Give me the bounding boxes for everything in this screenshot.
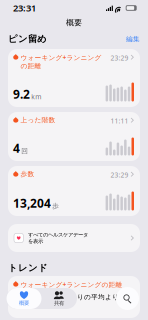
button[interactable]: 編集 xyxy=(126,35,140,43)
staticText: 共有 xyxy=(54,300,64,306)
button[interactable]: ウォーキング+ランニング の距離 xyxy=(8,49,140,107)
staticText: 13,204 xyxy=(13,195,51,211)
staticText: 概要 xyxy=(19,300,29,306)
button[interactable]: 概要 xyxy=(6,288,41,309)
staticText: 回 xyxy=(21,147,28,155)
staticText: 編集 xyxy=(126,35,140,43)
staticText: 4 xyxy=(13,140,20,156)
button[interactable]: Search xyxy=(116,287,139,310)
staticText: 歩 xyxy=(52,202,59,210)
staticText: 23:29 xyxy=(111,171,129,179)
staticText: 9.2 xyxy=(13,86,30,102)
staticText: すべてのヘルスケアデータ を表示 xyxy=(28,231,88,244)
staticText: 上った階数 xyxy=(20,116,55,124)
button[interactable]: ウォーキング+ランニングの距離 xyxy=(8,276,140,318)
staticText: 歩数 xyxy=(20,170,34,178)
staticText: 23:29 xyxy=(111,54,129,62)
button[interactable]: 共有 xyxy=(41,288,76,309)
staticText: 過去6日間の1日あたりの平均より 長い距離です。 xyxy=(13,292,119,309)
staticText: トレンド xyxy=(8,262,48,274)
staticText: 概要 xyxy=(66,18,82,27)
button[interactable]: 上った階数 xyxy=(8,112,140,161)
staticText: 23:31 xyxy=(13,2,36,14)
staticText: 11:11 xyxy=(111,117,129,125)
staticText: ウォーキング+ランニング の距離 xyxy=(20,53,101,70)
button[interactable]: 歩数 xyxy=(8,166,140,216)
staticText: km xyxy=(31,92,41,101)
staticText: ピン留め xyxy=(8,33,47,45)
staticText: ウォーキング+ランニングの距離 xyxy=(20,280,122,289)
button[interactable]: すべてのヘルスケアデータ を表示 xyxy=(8,224,140,252)
